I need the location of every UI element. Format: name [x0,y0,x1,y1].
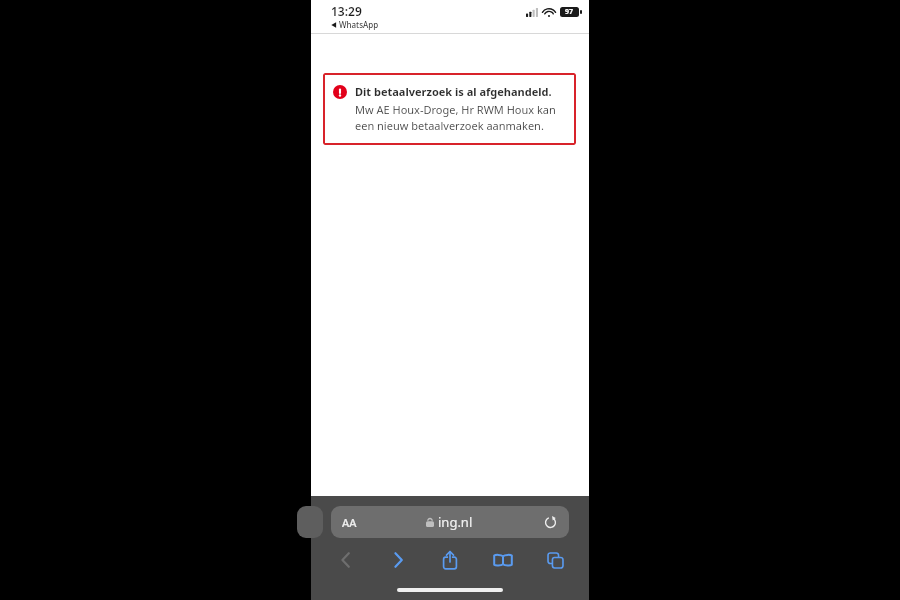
button[interactable]: Reload [542,514,558,530]
staticText: Mw AE Houx-Droge, Hr RWM Houx kan een ni… [355,102,566,133]
button[interactable]: Dit betaalverzoek is al afgehandeld. [323,73,576,145]
button[interactable]: Previous tab [297,506,323,538]
button[interactable]: Forward [378,545,418,575]
staticText: 13:29 [331,3,362,19]
staticText: 97 [565,7,574,17]
button[interactable]: Back [325,545,365,575]
staticText: WhatsApp [339,19,379,30]
button[interactable]: AA [342,515,357,530]
staticText: Dit betaalverzoek is al afgehandeld. [355,84,552,99]
button[interactable]: Share [430,545,470,575]
button[interactable]: AA [331,506,569,538]
button[interactable]: Tabs [535,545,575,575]
staticText: ing.nl [438,513,473,531]
button[interactable]: Bookmarks [483,545,523,575]
